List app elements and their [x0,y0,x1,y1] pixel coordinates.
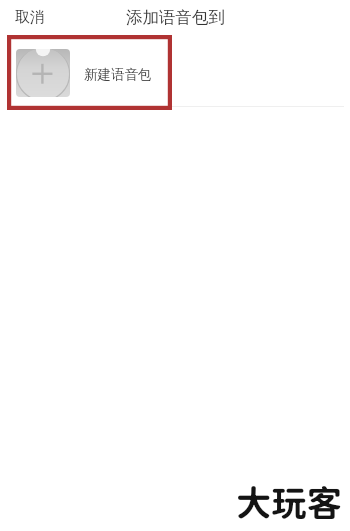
button[interactable]: 新建语音包 [0,40,350,106]
staticText: 取消 [15,8,45,27]
staticText: 新建语音包 [84,66,152,83]
other: 新建语音包 [16,49,70,97]
staticText: 添加语音包到 [126,7,225,28]
button[interactable]: 取消 [11,4,49,31]
staticText: 大玩客 [236,482,342,524]
